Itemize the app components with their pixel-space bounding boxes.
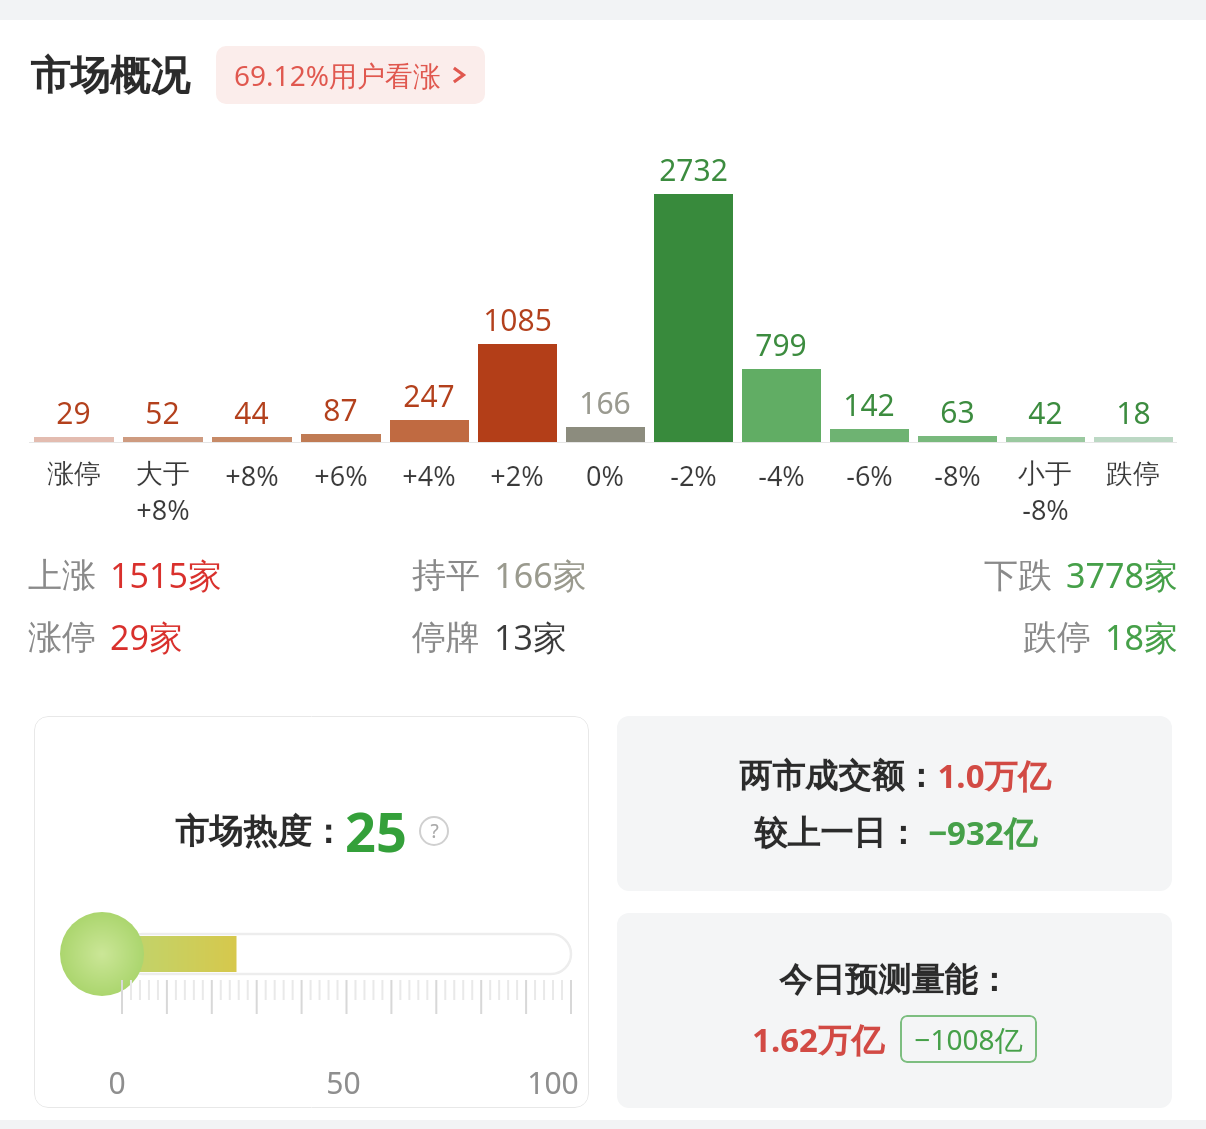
staticText: 18 xyxy=(1116,392,1151,433)
staticText: 29 xyxy=(56,392,91,433)
staticText: 持平 xyxy=(412,554,480,597)
button[interactable]: 两市成交额： xyxy=(617,716,1172,891)
button[interactable]: 69.12%用户看涨 xyxy=(216,46,485,104)
staticText: 63 xyxy=(940,391,975,432)
staticText: 涨停 xyxy=(47,457,101,491)
staticText: 42 xyxy=(1028,392,1063,433)
staticText: 18家 xyxy=(1105,614,1178,660)
staticText: 44 xyxy=(234,392,269,433)
staticText: +2% xyxy=(490,457,544,494)
staticText: 100 xyxy=(527,1062,579,1103)
staticText: 小于 xyxy=(1018,457,1072,491)
button[interactable]: 帮助 xyxy=(419,816,449,846)
staticText: -8% xyxy=(934,457,981,494)
staticText: 下跌 xyxy=(984,554,1052,597)
staticText: -4% xyxy=(758,457,805,494)
staticText: 市场概况 xyxy=(30,50,190,100)
staticText: 69.12%用户看涨 xyxy=(234,56,441,94)
staticText: 1.62万亿 xyxy=(752,1017,884,1062)
staticText: 87 xyxy=(323,389,358,430)
staticText: 涨停 xyxy=(28,616,96,659)
staticText: -6% xyxy=(846,457,893,494)
staticText: +4% xyxy=(402,457,456,494)
staticText: 停牌 xyxy=(412,616,480,659)
staticText: 29家 xyxy=(110,614,183,660)
staticText: 市场热度： xyxy=(175,810,345,853)
staticText: 52 xyxy=(145,392,180,433)
staticText: 3778家 xyxy=(1066,552,1178,598)
staticText: 2732 xyxy=(659,149,728,190)
staticText: +6% xyxy=(314,457,368,494)
staticText: 跌停 xyxy=(1106,457,1160,491)
staticText: 上涨 xyxy=(28,554,96,597)
staticText: -2% xyxy=(670,457,717,494)
staticText: 166家 xyxy=(494,552,587,598)
staticText: 大于 xyxy=(136,457,190,491)
staticText: +8% xyxy=(136,491,190,528)
staticText: +8% xyxy=(225,457,279,494)
staticText: ? xyxy=(430,818,439,844)
staticText: 0 xyxy=(108,1062,126,1103)
staticText: 247 xyxy=(403,375,455,416)
staticText: 两市成交额： xyxy=(739,755,937,797)
staticText: 25 xyxy=(345,794,407,868)
staticText: 今日预测量能： xyxy=(779,959,1010,1001)
staticText: 较上一日： xyxy=(754,812,919,854)
staticText: 142 xyxy=(843,384,895,425)
staticText: 166 xyxy=(579,382,631,423)
staticText: 跌停 xyxy=(1023,616,1091,659)
staticText: −932亿 xyxy=(919,810,1037,855)
button[interactable]: 今日预测量能： xyxy=(617,913,1172,1108)
staticText: 0% xyxy=(586,457,624,494)
staticText: 1515家 xyxy=(110,552,222,598)
staticText: 1.0万亿 xyxy=(937,753,1051,798)
staticText: 799 xyxy=(755,324,807,365)
staticText: 13家 xyxy=(494,614,567,660)
staticText: −1008亿 xyxy=(914,1020,1023,1058)
button[interactable]: 市场热度： xyxy=(34,716,589,1108)
staticText: 1085 xyxy=(483,299,552,340)
staticText: -8% xyxy=(1022,491,1069,528)
staticText: 50 xyxy=(326,1062,361,1103)
